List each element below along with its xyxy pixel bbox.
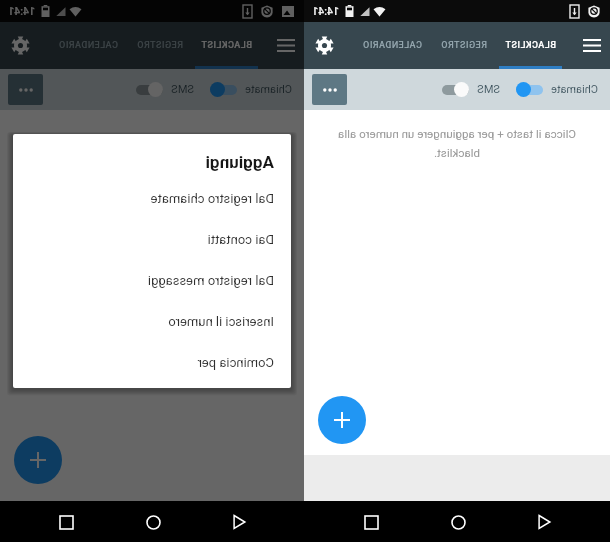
staticText: Clicca il tasto + per aggiungere un nume…: [326, 127, 588, 160]
button[interactable]: Recents: [46, 502, 86, 542]
button[interactable]: Home: [133, 502, 173, 542]
staticText: Inserisci il numero: [33, 314, 274, 329]
button[interactable]: Menu: [267, 22, 304, 69]
button[interactable]: SMS: [134, 82, 196, 97]
staticText: 14:41: [312, 5, 339, 17]
staticText: Chiamate: [245, 83, 292, 96]
staticText: Aggiungi: [33, 152, 274, 172]
button[interactable]: Settings: [0, 22, 40, 69]
button[interactable]: CALENDARIO: [51, 22, 124, 69]
staticText: CALENDARIO: [362, 40, 422, 51]
button[interactable]: BLACKLIST: [195, 22, 258, 69]
staticText: REGISTRO: [136, 40, 183, 51]
button[interactable]: REGISTRO: [124, 22, 195, 69]
staticText: 14:41: [8, 5, 35, 17]
staticText: Dal registro chiamate: [33, 191, 274, 206]
staticText: SMS: [171, 83, 194, 96]
button[interactable]: Dal registro messaggi: [33, 260, 274, 301]
staticText: BLACKLIST: [505, 40, 556, 51]
button[interactable]: BLACKLIST: [499, 22, 562, 69]
staticText: CALENDARIO: [58, 40, 118, 51]
button[interactable]: Back: [524, 502, 564, 542]
button[interactable]: Chiamate: [208, 82, 294, 97]
staticText: Comincia per: [33, 355, 274, 370]
staticText: SMS: [477, 83, 500, 96]
staticText: REGISTRO: [440, 40, 487, 51]
button[interactable]: REGISTRO: [428, 22, 499, 69]
button[interactable]: SMS: [440, 82, 502, 97]
staticText: Dai contatti: [33, 232, 274, 247]
staticText: BLACKLIST: [201, 40, 252, 51]
button[interactable]: Inserisci il numero: [33, 301, 274, 342]
button[interactable]: Add: [318, 396, 366, 444]
button[interactable]: Dai contatti: [33, 219, 274, 260]
button[interactable]: Back: [219, 502, 259, 542]
button[interactable]: CALENDARIO: [355, 22, 428, 69]
button[interactable]: Menu: [573, 22, 610, 69]
button[interactable]: Settings: [304, 22, 344, 69]
button[interactable]: Add: [14, 436, 62, 484]
button[interactable]: Comincia per: [33, 342, 274, 383]
button[interactable]: Recents: [351, 502, 391, 542]
staticText: Dal registro messaggi: [33, 273, 274, 288]
staticText: Chiamate: [551, 83, 598, 96]
button[interactable]: Chiamate: [514, 82, 600, 97]
button[interactable]: Dal registro chiamate: [33, 178, 274, 219]
button[interactable]: More options: [312, 74, 347, 105]
button[interactable]: More options: [8, 74, 43, 105]
button[interactable]: Home: [438, 502, 478, 542]
